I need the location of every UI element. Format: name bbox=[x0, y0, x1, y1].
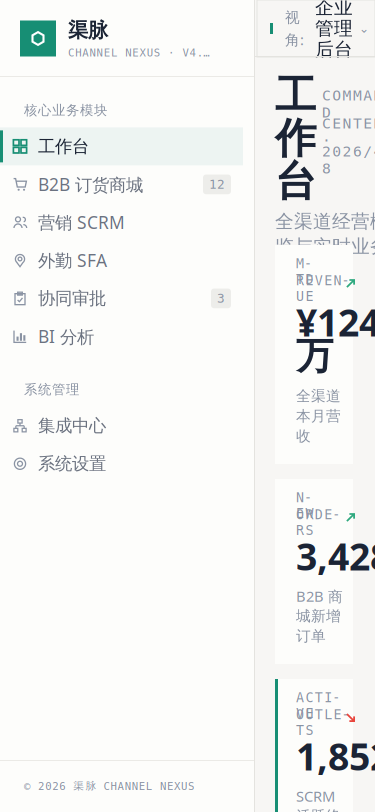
button[interactable]: 外勤 SFA bbox=[0, 241, 243, 279]
staticText: B2B 订货商城 bbox=[38, 173, 143, 196]
staticText: 系统管理 bbox=[24, 381, 79, 398]
staticText: 3,428 bbox=[296, 531, 375, 581]
button[interactable]: 集成中心 bbox=[0, 407, 243, 445]
staticText: 台 bbox=[275, 156, 316, 207]
staticText: SCRM bbox=[296, 786, 335, 806]
button[interactable]: 协同审批 bbox=[0, 279, 243, 317]
staticText: 工 bbox=[275, 70, 316, 121]
staticText: 活跃终 bbox=[296, 807, 341, 812]
button[interactable]: BI 分析 bbox=[0, 317, 243, 355]
staticText: ORDERS bbox=[296, 507, 350, 538]
button[interactable]: 工作台 bbox=[0, 127, 243, 165]
staticText: 全渠道 bbox=[296, 387, 341, 405]
staticText: CHANNEL NEXUS · V4.2 bbox=[68, 47, 210, 59]
staticText: 订单 bbox=[296, 627, 326, 645]
staticText: 工作台 bbox=[38, 136, 89, 157]
staticText: OUTLETS bbox=[296, 707, 359, 738]
staticText: 全渠道经营概 bbox=[275, 210, 375, 233]
staticText: REVENUE bbox=[296, 273, 359, 304]
staticText: ⌄ bbox=[359, 22, 369, 35]
button[interactable]: B2B 订货商城 bbox=[0, 165, 243, 203]
staticText: © 2026 渠脉 CHANNEL NEXUS bbox=[24, 779, 194, 793]
staticText: 览与实时业务 bbox=[275, 235, 375, 258]
staticText: BI 分析 bbox=[38, 325, 94, 348]
button[interactable]: 系统设置 bbox=[0, 445, 243, 483]
staticText: CENTER · bbox=[322, 115, 375, 149]
staticText: ¥1240 bbox=[296, 297, 375, 347]
staticText: B2B 商 bbox=[296, 586, 343, 606]
staticText: 外勤 SFA bbox=[38, 249, 107, 272]
staticText: 企业 bbox=[315, 0, 353, 19]
staticText: 协同审批 bbox=[38, 288, 106, 309]
button[interactable]: 视 bbox=[257, 0, 375, 57]
staticText: 1,852 bbox=[296, 731, 375, 781]
staticText: COMMAND bbox=[322, 87, 375, 121]
staticText: 城新增 bbox=[296, 607, 341, 625]
staticText: 系统设置 bbox=[38, 453, 106, 474]
staticText: 作 bbox=[275, 113, 316, 164]
staticText: 本月营 bbox=[296, 407, 341, 425]
staticText: 万 bbox=[296, 333, 333, 379]
staticText: 管理 bbox=[315, 17, 353, 40]
staticText: 集成中心 bbox=[38, 415, 106, 436]
staticText: 2026/4/8 bbox=[322, 143, 375, 177]
staticText: 收 bbox=[296, 427, 311, 445]
staticText: 视 bbox=[285, 8, 300, 26]
button[interactable]: 营销 SCRM bbox=[0, 203, 243, 241]
staticText: ACTIVE bbox=[296, 690, 350, 721]
staticText: MTD bbox=[296, 256, 321, 287]
staticText: 动态 bbox=[275, 260, 313, 283]
staticText: 营销 SCRM bbox=[38, 211, 125, 234]
staticText: 核心业务模块 bbox=[24, 102, 107, 118]
staticText: NEW bbox=[296, 490, 321, 521]
staticText: 12 bbox=[209, 177, 225, 192]
staticText: 后台 bbox=[315, 38, 353, 61]
staticText: 渠脉 bbox=[68, 18, 108, 43]
staticText: 角: bbox=[285, 30, 304, 49]
staticText: 3 bbox=[217, 291, 225, 306]
